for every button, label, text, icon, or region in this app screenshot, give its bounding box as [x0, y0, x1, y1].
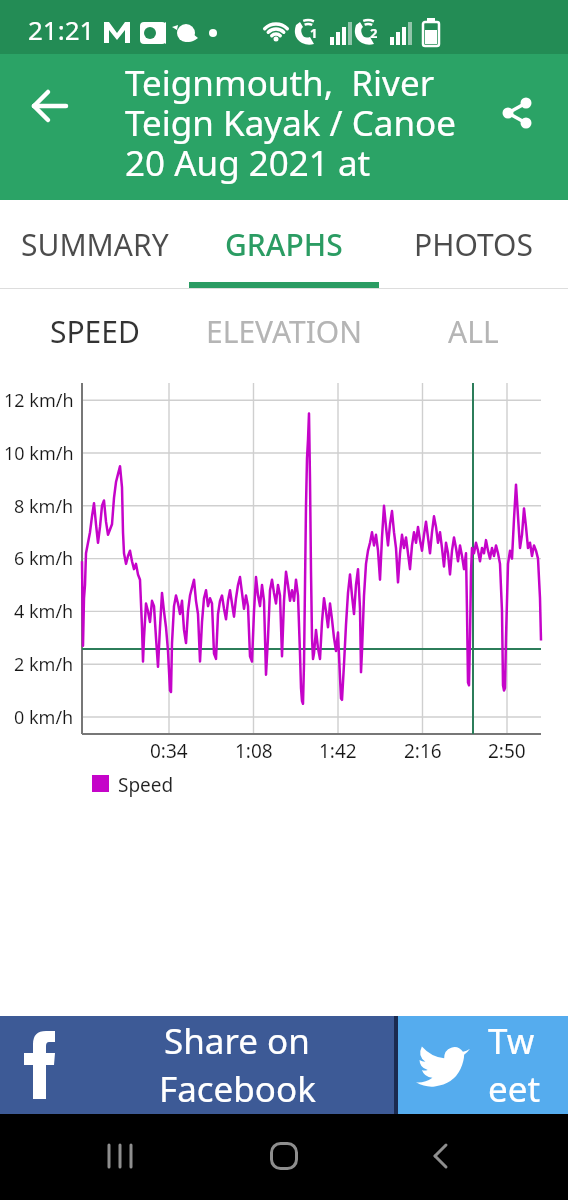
staticText: SUMMARY: [21, 224, 169, 265]
button[interactable]: ALL: [379, 289, 568, 373]
staticText: 20 Aug 2021 at: [125, 139, 371, 187]
staticText: 0 km/h: [14, 705, 74, 729]
staticText: Share on: [164, 1017, 310, 1065]
staticText: Tw: [488, 1017, 535, 1065]
staticText: GRAPHS: [225, 224, 343, 265]
button[interactable]: SPEED: [0, 289, 189, 373]
staticText: 2: [370, 24, 378, 42]
staticText: 12 km/h: [4, 388, 74, 412]
staticText: 1:42: [319, 738, 357, 764]
staticText: eet: [488, 1065, 541, 1113]
staticText: ALL: [448, 311, 499, 352]
staticText: Facebook: [159, 1065, 316, 1113]
button[interactable]: [256, 1128, 312, 1184]
button[interactable]: [22, 78, 78, 134]
button[interactable]: Tw: [398, 1016, 568, 1114]
staticText: Speed: [118, 772, 174, 798]
button[interactable]: PHOTOS: [379, 200, 568, 288]
staticText: 1:08: [235, 738, 273, 764]
staticText: Teignmouth, River: [125, 59, 435, 107]
staticText: ELEVATION: [206, 311, 363, 352]
staticText: Teign Kayak / Canoe: [125, 99, 457, 147]
button[interactable]: [412, 1128, 468, 1184]
staticText: PHOTOS: [414, 224, 533, 265]
staticText: 10 km/h: [4, 441, 74, 465]
button[interactable]: SUMMARY: [0, 200, 189, 288]
staticText: 2:16: [404, 738, 442, 764]
staticText: SPEED: [50, 311, 140, 352]
staticText: 6 km/h: [14, 546, 74, 570]
button[interactable]: Share on: [0, 1016, 394, 1114]
staticText: 8 km/h: [14, 494, 74, 518]
button[interactable]: GRAPHS: [189, 200, 379, 288]
staticText: 2 km/h: [14, 652, 74, 676]
button[interactable]: ELEVATION: [189, 289, 379, 373]
staticText: 2:50: [488, 738, 526, 764]
staticText: 21:21: [28, 12, 95, 47]
button[interactable]: [92, 1128, 148, 1184]
staticText: 1: [310, 24, 318, 42]
staticText: 0:34: [150, 738, 188, 764]
staticText: 4 km/h: [14, 599, 74, 623]
button[interactable]: [492, 80, 544, 132]
